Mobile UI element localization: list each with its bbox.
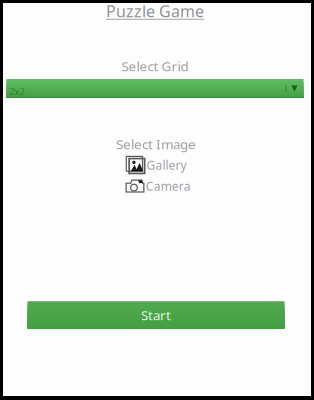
- staticText: Gallery: [146, 157, 186, 173]
- button[interactable]: Start: [27, 301, 284, 329]
- staticText: Camera: [146, 178, 191, 194]
- button[interactable]: Camera: [125, 178, 191, 194]
- staticText: Start: [141, 306, 171, 324]
- button[interactable]: Gallery: [126, 156, 186, 174]
- staticText: 2x2: [9, 85, 24, 98]
- staticText: Select Image: [116, 135, 196, 153]
- staticText: Select Grid: [121, 57, 188, 75]
- staticText: Puzzle Game: [106, 0, 204, 22]
- button[interactable]: 2x2: [6, 79, 303, 98]
